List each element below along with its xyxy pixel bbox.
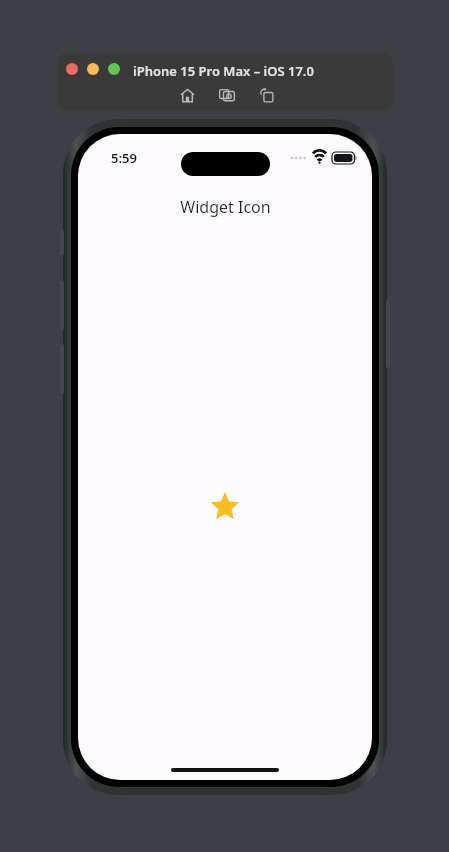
button[interactable]: Star widget icon [210, 492, 240, 522]
button[interactable]: Close [66, 63, 78, 75]
button[interactable]: Rotate [255, 83, 279, 107]
button[interactable]: Screenshot [215, 83, 239, 107]
button[interactable]: Minimize [87, 63, 99, 75]
button[interactable]: Home [175, 83, 199, 107]
staticText: 5:59 [111, 149, 137, 167]
staticText: Widget Icon [180, 196, 271, 218]
staticText: iPhone 15 Pro Max – iOS 17.0 [133, 62, 314, 80]
button[interactable]: Zoom [108, 63, 120, 75]
